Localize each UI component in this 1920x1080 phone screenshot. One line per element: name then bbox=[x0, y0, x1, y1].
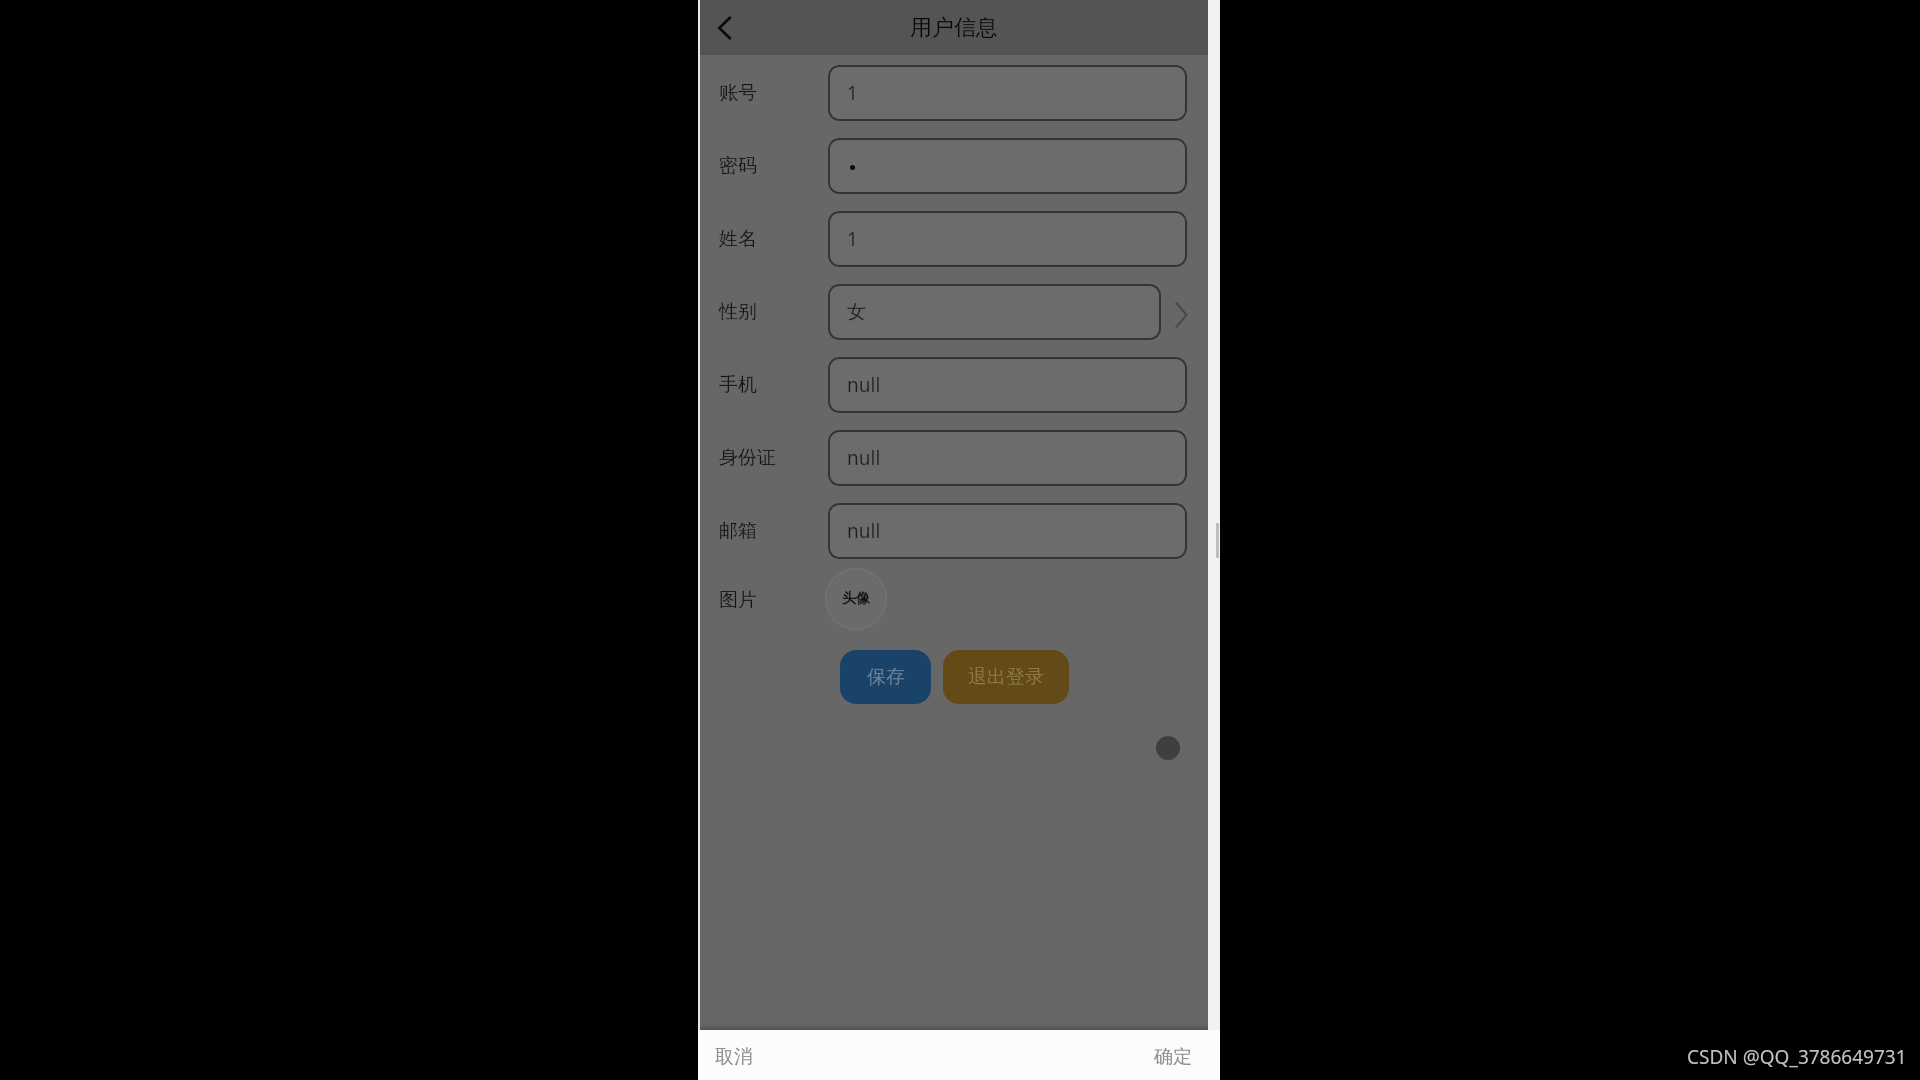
staticText: 头像 bbox=[842, 590, 870, 608]
staticText: 手机 bbox=[719, 373, 757, 397]
button[interactable]: null bbox=[828, 503, 1187, 559]
staticText: 女 bbox=[847, 300, 866, 324]
staticText: 密码 bbox=[719, 154, 757, 178]
button[interactable]: 保存 bbox=[840, 650, 931, 704]
staticText: 取消 bbox=[715, 1045, 753, 1069]
staticText: 邮箱 bbox=[719, 519, 757, 543]
staticText: 性别 bbox=[719, 300, 757, 324]
button[interactable]: Back bbox=[704, 8, 744, 48]
staticText: 图片 bbox=[719, 588, 757, 612]
button[interactable]: 女 bbox=[828, 284, 1161, 340]
button[interactable] bbox=[828, 138, 1187, 194]
staticText: 确定 bbox=[1154, 1045, 1192, 1069]
button[interactable]: Profile picture bbox=[825, 568, 887, 630]
button[interactable]: 取消 bbox=[715, 1045, 753, 1069]
staticText: 1 bbox=[847, 226, 858, 252]
staticText: null bbox=[847, 518, 881, 544]
button[interactable]: null bbox=[828, 430, 1187, 486]
staticText: null bbox=[847, 445, 881, 471]
staticText: 用户信息 bbox=[910, 14, 998, 42]
button[interactable]: 1 bbox=[828, 211, 1187, 267]
button[interactable]: Select gender bbox=[1172, 300, 1190, 330]
button[interactable]: null bbox=[828, 357, 1187, 413]
button[interactable]: 1 bbox=[828, 65, 1187, 121]
staticText: 退出登录 bbox=[968, 665, 1044, 689]
staticText: 保存 bbox=[867, 665, 905, 689]
button[interactable]: More options bbox=[1156, 736, 1180, 760]
button[interactable]: 退出登录 bbox=[943, 650, 1069, 704]
button[interactable]: 确定 bbox=[1154, 1045, 1192, 1069]
staticText: CSDN @QQ_3786649731 bbox=[1687, 1044, 1907, 1070]
staticText: 姓名 bbox=[719, 227, 757, 251]
staticText: 身份证 bbox=[719, 446, 776, 470]
staticText: 1 bbox=[847, 80, 858, 106]
staticText: null bbox=[847, 372, 881, 398]
staticText: 账号 bbox=[719, 81, 757, 105]
